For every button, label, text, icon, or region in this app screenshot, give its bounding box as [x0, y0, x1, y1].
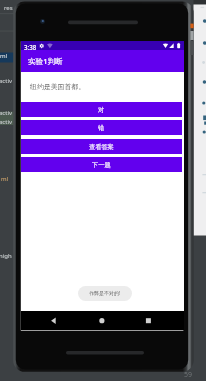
staticText: nigh	[0, 252, 12, 260]
staticText: 实验1判断	[28, 56, 63, 66]
button[interactable]: 查看答案	[21, 139, 182, 154]
button[interactable]: 对	[21, 102, 182, 117]
button[interactable]: 实验1判断	[21, 50, 184, 72]
button[interactable]: 下一题	[21, 157, 182, 172]
button[interactable]: Recent apps	[137, 313, 155, 328]
staticText: 作弊是不对的!	[89, 290, 121, 297]
staticText: activ	[0, 77, 13, 85]
button[interactable]: Back	[45, 313, 63, 328]
staticText: 3:38	[24, 43, 37, 51]
button[interactable]: 错	[21, 120, 182, 135]
staticText: 错	[98, 124, 105, 132]
staticText: 59	[184, 370, 193, 380]
staticText: 纽约是美国首都。	[30, 82, 86, 91]
staticText: 查看答案	[89, 143, 114, 151]
staticText: ml	[0, 52, 8, 60]
staticText: res	[4, 4, 13, 12]
staticText: ml	[1, 175, 9, 183]
staticText: activ	[0, 118, 13, 126]
staticText: 下一题	[92, 161, 111, 169]
staticText: 对	[98, 106, 105, 114]
staticText: activ	[0, 109, 13, 117]
button[interactable]: Home	[93, 313, 111, 328]
